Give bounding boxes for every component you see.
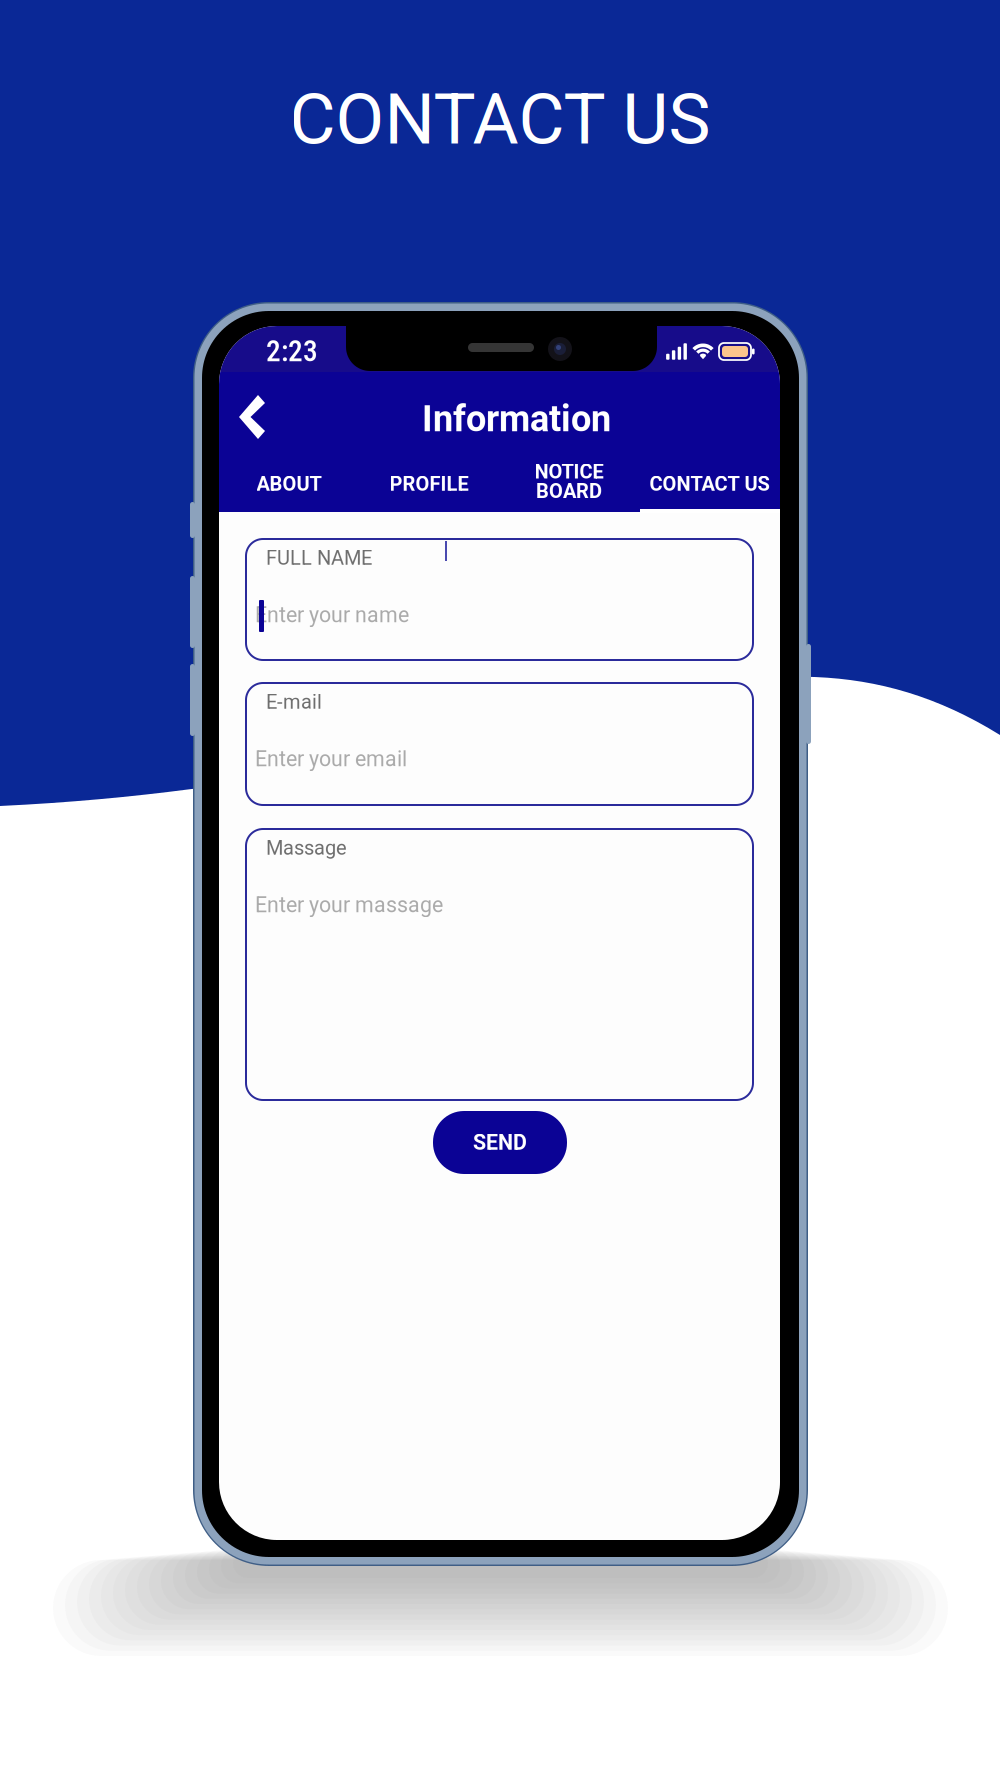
button[interactable]: PROFILE bbox=[219, 326, 780, 1540]
staticText: Enter your email bbox=[255, 746, 407, 771]
staticText: SEND bbox=[473, 1130, 527, 1155]
button[interactable]: FULL NAME bbox=[246, 539, 753, 660]
button[interactable]: Massage bbox=[246, 829, 753, 1100]
staticText: PROFILE bbox=[389, 472, 468, 496]
button[interactable]: NOTICE bbox=[219, 326, 780, 1540]
staticText: E-mail bbox=[266, 690, 322, 714]
staticText: BOARD bbox=[536, 479, 602, 503]
staticText: Massage bbox=[266, 836, 347, 860]
staticText: ABOUT bbox=[256, 472, 321, 496]
staticText: Enter your massage bbox=[255, 892, 443, 917]
button[interactable]: E-mail bbox=[246, 683, 753, 805]
staticText: FULL NAME bbox=[266, 546, 372, 570]
staticText: NOTICE bbox=[534, 460, 603, 483]
staticText: 2:23 bbox=[266, 334, 318, 360]
button[interactable]: ABOUT bbox=[219, 326, 780, 1540]
staticText: Information bbox=[422, 398, 611, 440]
button[interactable]: SEND bbox=[219, 326, 780, 1540]
button[interactable]: Back bbox=[219, 326, 780, 1540]
staticText: CONTACT US bbox=[649, 472, 769, 496]
staticText: CONTACT US bbox=[289, 78, 710, 158]
button[interactable]: CONTACT US bbox=[219, 326, 780, 1540]
staticText: Enter your name bbox=[255, 602, 409, 627]
